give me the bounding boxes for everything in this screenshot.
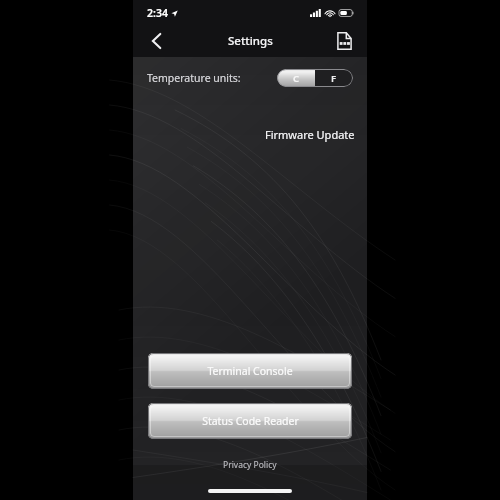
staticText: Temperature units: — [147, 71, 241, 85]
button[interactable]: Back — [141, 26, 171, 56]
button[interactable]: C — [277, 69, 315, 87]
button[interactable]: Status Code Reader — [148, 403, 352, 439]
staticText: 2:34 — [147, 6, 168, 20]
staticText: Privacy Policy — [223, 459, 277, 471]
button[interactable]: F — [315, 69, 353, 87]
staticText: C — [293, 72, 300, 85]
staticText: Status Code Reader — [202, 414, 299, 428]
button[interactable]: Log — [329, 26, 359, 56]
staticText: Firmware Update — [265, 127, 355, 142]
staticText: F — [331, 72, 337, 85]
staticText: Settings — [228, 33, 273, 49]
button[interactable]: Firmware Update — [145, 123, 355, 145]
button[interactable]: Terminal Console — [148, 353, 352, 389]
button[interactable]: Privacy Policy — [213, 457, 287, 473]
staticText: Terminal Console — [207, 364, 293, 378]
